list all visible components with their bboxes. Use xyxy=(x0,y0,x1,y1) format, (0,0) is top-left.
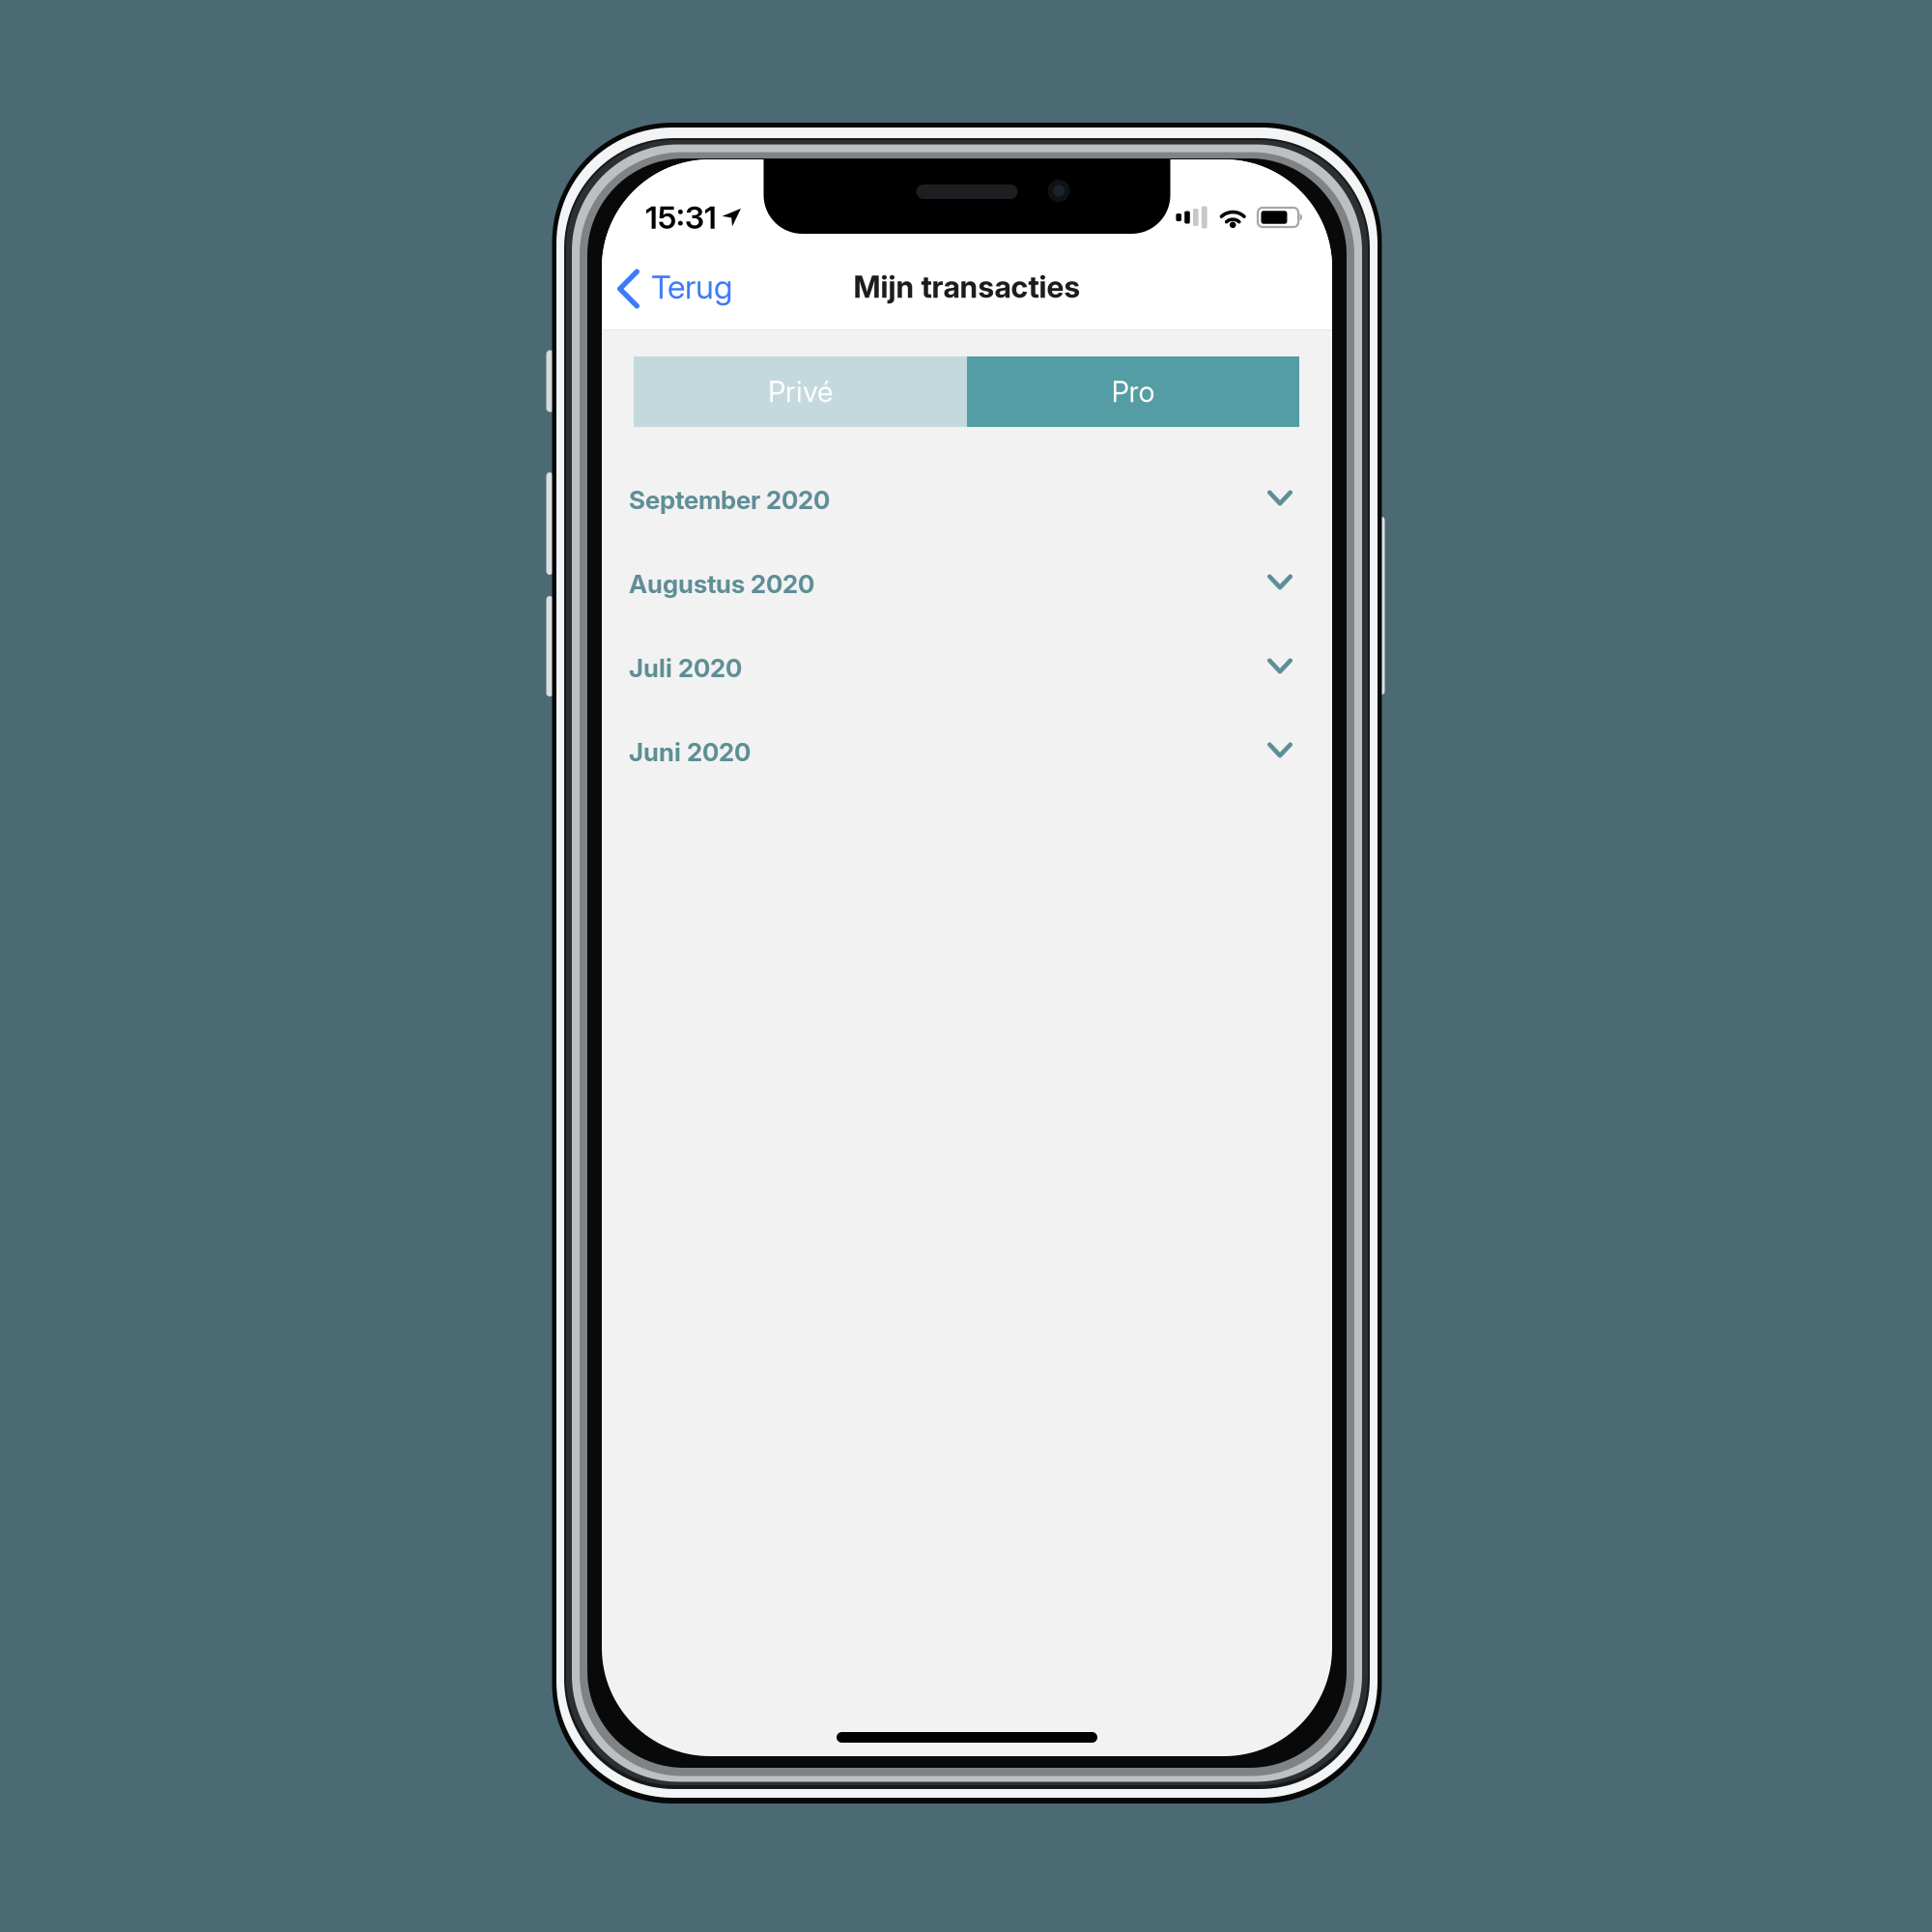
button[interactable]: September 2020 xyxy=(602,458,1332,542)
staticText: Mijn transacties xyxy=(853,269,1080,305)
button[interactable]: Augustus 2020 xyxy=(602,542,1332,626)
button[interactable]: Terug xyxy=(602,249,746,325)
button[interactable]: Privé xyxy=(634,356,967,427)
button[interactable]: Juli 2020 xyxy=(602,626,1332,710)
staticText: Privé xyxy=(768,375,833,409)
staticText: Pro xyxy=(1111,375,1155,409)
staticText: Juni 2020 xyxy=(629,737,751,767)
staticText: 15:31 xyxy=(645,199,717,236)
staticText: Terug xyxy=(651,267,732,306)
staticText: Juli 2020 xyxy=(629,653,742,683)
button[interactable]: Juni 2020 xyxy=(602,710,1332,794)
staticText: September 2020 xyxy=(629,485,830,515)
button[interactable]: Pro xyxy=(967,356,1299,427)
staticText: Augustus 2020 xyxy=(629,569,814,599)
